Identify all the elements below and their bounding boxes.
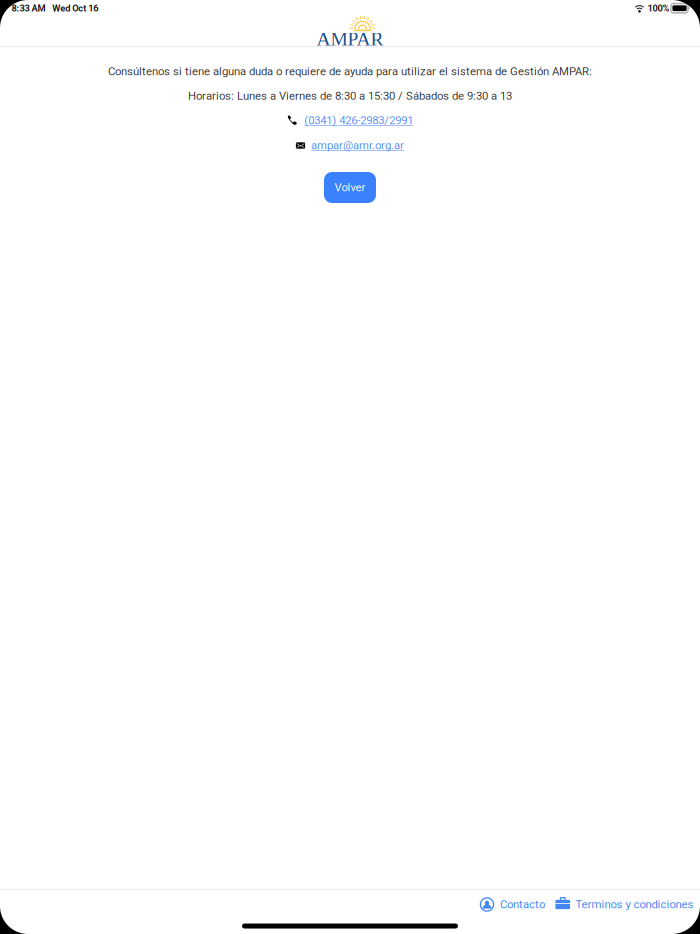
staticText: Contacto [500, 898, 545, 911]
staticText: Wed Oct 16 [52, 3, 98, 14]
button[interactable]: Call (0341) 426-2983/2991 [287, 114, 413, 127]
button[interactable]: Email ampar@amr.org.ar [296, 139, 404, 152]
staticText: 8:33 AM [12, 3, 46, 14]
staticText: Terminos y condiciones [576, 898, 694, 911]
staticText: Horarios: Lunes a Viernes de 8:30 a 15:3… [188, 89, 512, 103]
staticText: AMPAR [316, 28, 383, 50]
staticText: ampar@amr.org.ar [311, 139, 404, 152]
button[interactable]: Contacto [480, 898, 545, 911]
staticText: 100% [648, 3, 670, 14]
staticText: Consúltenos si tiene alguna duda o requi… [108, 65, 592, 78]
button[interactable]: Volver [324, 172, 376, 203]
staticText: (0341) 426-2983/2991 [304, 114, 413, 127]
button[interactable]: Terminos y condiciones [555, 898, 694, 911]
staticText: Volver [334, 181, 365, 194]
